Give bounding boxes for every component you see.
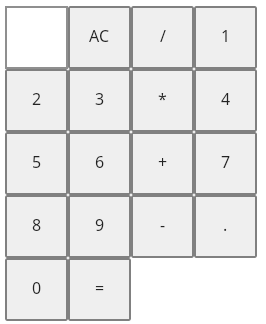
staticText: 9: [95, 214, 105, 236]
button[interactable]: 6: [68, 132, 131, 195]
staticText: 3: [95, 88, 105, 110]
staticText: .: [223, 214, 228, 236]
staticText: /: [160, 25, 166, 47]
button[interactable]: AC: [68, 6, 131, 69]
staticText: *: [158, 88, 167, 110]
button[interactable]: 0: [5, 258, 68, 321]
button[interactable]: 4: [194, 69, 257, 132]
staticText: +: [158, 151, 168, 173]
staticText: 8: [32, 214, 42, 236]
button[interactable]: 2: [5, 69, 68, 132]
staticText: 6: [95, 151, 105, 173]
button[interactable]: +: [131, 132, 194, 195]
staticText: 2: [32, 88, 42, 110]
button[interactable]: .: [194, 195, 257, 258]
button[interactable]: 1: [194, 6, 257, 69]
staticText: 1: [221, 25, 231, 47]
button[interactable]: 7: [194, 132, 257, 195]
staticText: 7: [221, 151, 231, 173]
staticText: =: [95, 277, 105, 299]
staticText: 0: [32, 277, 42, 299]
button[interactable]: [5, 6, 68, 69]
staticText: AC: [89, 25, 110, 47]
button[interactable]: 3: [68, 69, 131, 132]
button[interactable]: 8: [5, 195, 68, 258]
button[interactable]: =: [68, 258, 131, 321]
button[interactable]: /: [131, 6, 194, 69]
staticText: 4: [221, 88, 231, 110]
button[interactable]: 9: [68, 195, 131, 258]
button[interactable]: 5: [5, 132, 68, 195]
button[interactable]: -: [131, 195, 194, 258]
button[interactable]: *: [131, 69, 194, 132]
staticText: -: [160, 214, 166, 236]
staticText: 5: [32, 151, 42, 173]
